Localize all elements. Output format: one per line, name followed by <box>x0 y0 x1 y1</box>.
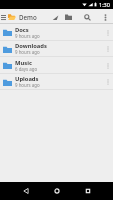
staticText: 9 hours ago <box>15 82 40 88</box>
staticText: Uploads <box>15 75 39 83</box>
staticText: 9 hours ago <box>15 49 40 55</box>
button[interactable]: Uploads <box>0 74 113 90</box>
staticText: 6 days ago <box>15 66 38 72</box>
button[interactable]: Downloads <box>0 41 113 57</box>
button[interactable]: Back <box>12 182 39 200</box>
staticText: Music <box>15 59 32 67</box>
staticText: Downloads <box>15 42 47 50</box>
button[interactable]: More options <box>103 24 113 41</box>
staticText: Docs <box>15 26 29 34</box>
button[interactable]: New folder <box>59 10 77 24</box>
button[interactable]: More options <box>103 41 113 57</box>
button[interactable]: Search <box>77 10 97 24</box>
button[interactable]: More options <box>103 57 113 74</box>
button[interactable]: Recents <box>74 182 101 200</box>
staticText: 9 hours ago <box>15 33 40 39</box>
button[interactable]: More options <box>103 74 113 90</box>
staticText: Demo <box>19 13 37 21</box>
button[interactable]: Home <box>43 182 70 200</box>
button[interactable]: Docs <box>0 24 113 41</box>
button[interactable]: Music <box>0 57 113 74</box>
button[interactable]: Open navigation drawer <box>0 10 7 24</box>
button[interactable]: More options <box>97 10 113 24</box>
staticText: 1:30 <box>99 1 110 8</box>
